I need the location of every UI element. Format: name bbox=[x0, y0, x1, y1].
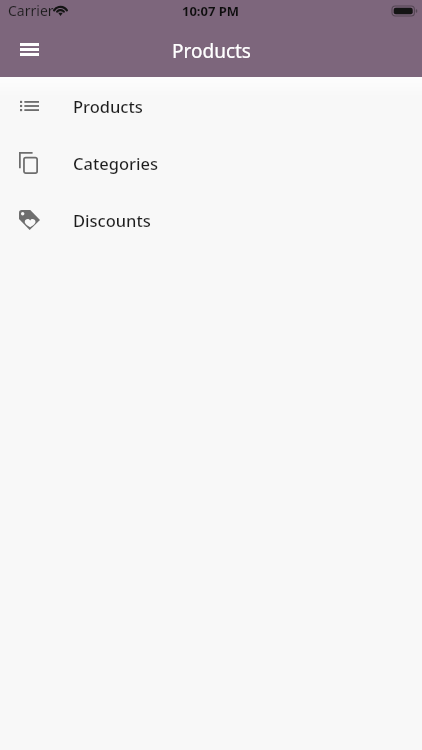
staticText: Categories bbox=[73, 152, 158, 174]
button[interactable]: Products bbox=[0, 77, 422, 134]
staticText: Discounts bbox=[73, 209, 151, 231]
staticText: 10:07 PM bbox=[182, 2, 240, 20]
staticText: Carrier bbox=[8, 1, 54, 20]
button[interactable]: Discounts bbox=[0, 191, 422, 248]
staticText: Products bbox=[172, 38, 251, 64]
button[interactable]: Categories bbox=[0, 134, 422, 191]
button[interactable]: Open navigation menu bbox=[8, 28, 51, 71]
staticText: Products bbox=[73, 95, 143, 117]
